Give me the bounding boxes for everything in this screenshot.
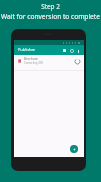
button[interactable]: More options [75,48,81,54]
staticText: Step 2 [41,2,60,11]
button[interactable]: Search [68,47,75,54]
button[interactable]: Brochure [14,55,84,67]
button[interactable]: Stop [61,47,68,54]
staticText: Publisher [18,47,36,52]
staticText: Wait for conversion to complete [1,12,100,21]
staticText: Brochure [24,57,38,61]
staticText: Converting 23% [24,61,44,65]
button[interactable]: Add [70,145,78,153]
button[interactable]: Converting [73,57,82,66]
